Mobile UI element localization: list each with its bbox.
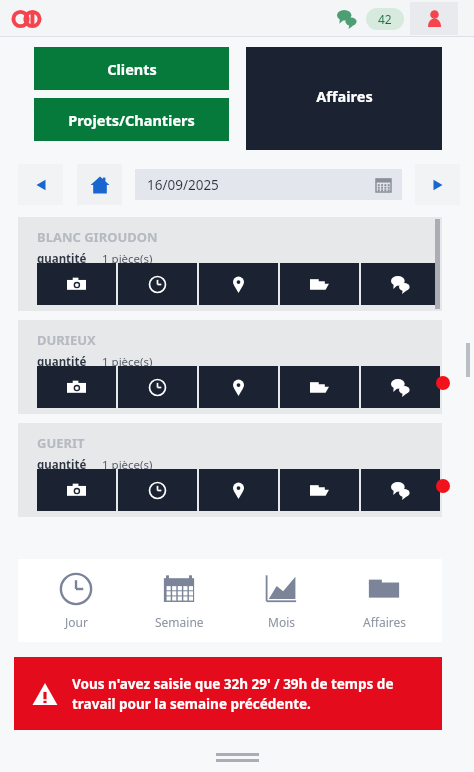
button[interactable]: Clients [34,47,229,90]
button[interactable]: Chat [361,469,440,511]
staticText: Mois [268,614,295,630]
staticText: 16/09/2025 [147,176,219,194]
button[interactable]: Messages [332,4,362,34]
button[interactable]: Files [280,263,359,305]
staticText: BLANC GIROUDON [37,228,158,246]
staticText: DURIEUX [37,331,96,349]
button[interactable]: Jour [32,571,120,630]
button[interactable]: Chat [361,263,440,305]
button[interactable]: 42 [366,8,404,30]
staticText: 1 pièce(s) [102,457,153,473]
staticText: Affaires [316,86,373,106]
button[interactable]: Affaires [246,47,442,150]
staticText: Vous n'avez saisie que 32h 29' / 39h de … [72,675,428,713]
staticText: 1 pièce(s) [102,354,153,370]
staticText: 1 pièce(s) [102,251,153,267]
button[interactable]: Profile [410,2,458,35]
staticText: 42 [378,11,392,27]
button[interactable]: Photo [37,366,116,408]
staticText: Affaires [363,614,406,630]
button[interactable]: Home [77,164,122,205]
button[interactable]: Location [199,469,278,511]
button[interactable]: Location [199,366,278,408]
button[interactable]: Photo [37,263,116,305]
button[interactable]: Affaires [340,571,428,630]
button[interactable]: Files [280,469,359,511]
staticText: Projets/Chantiers [68,110,195,130]
button[interactable]: Time [118,263,197,305]
button[interactable]: Mois [237,571,325,630]
staticText: quantité [37,251,87,267]
button[interactable]: Photo [37,469,116,511]
button[interactable]: Vous n'avez saisie que 32h 29' / 39h de … [14,657,442,730]
staticText: Semaine [155,614,204,630]
button[interactable]: Location [199,263,278,305]
button[interactable]: Projets/Chantiers [34,98,229,141]
button[interactable]: Time [118,366,197,408]
staticText: quantité [37,354,87,370]
button[interactable]: Time [118,469,197,511]
button[interactable]: Next day [415,164,460,205]
staticText: Jour [65,614,88,630]
staticText: quantité [37,457,87,473]
button[interactable]: Previous day [18,164,63,205]
button[interactable]: Semaine [135,571,223,630]
button[interactable]: Chat [361,366,440,408]
button[interactable]: Files [280,366,359,408]
button[interactable]: 16/09/2025 [135,169,402,200]
staticText: GUERIT [37,434,85,452]
staticText: Clients [107,59,157,79]
